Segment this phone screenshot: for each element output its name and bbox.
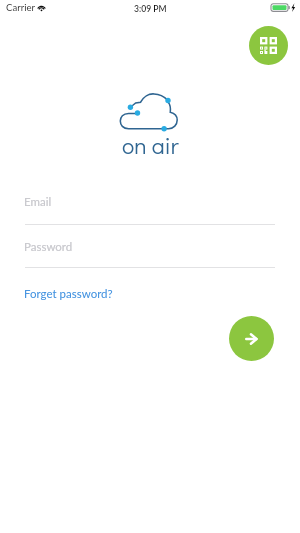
staticText: Email [24, 195, 52, 209]
staticText: Carrier [6, 2, 36, 14]
staticText: Password [24, 240, 73, 254]
button[interactable]: Sign in [229, 316, 274, 361]
staticText: on air [122, 130, 179, 160]
button[interactable]: Scan QR code [249, 26, 288, 65]
staticText: Forget password? [24, 287, 113, 301]
staticText: 3:09 PM [134, 4, 167, 14]
button[interactable]: Forget password? [21, 284, 110, 298]
